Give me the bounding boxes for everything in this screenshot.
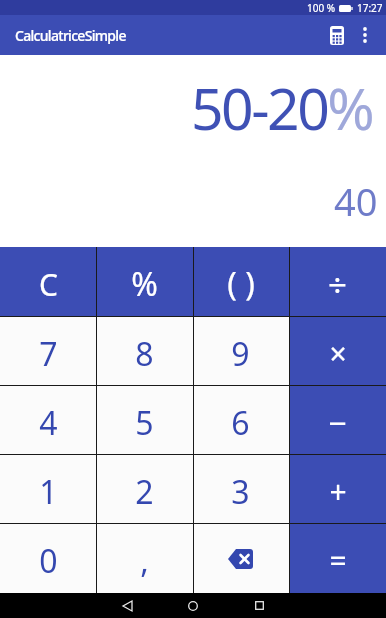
button[interactable]: , bbox=[96, 524, 192, 593]
button[interactable]: 4 bbox=[0, 386, 96, 455]
button[interactable]: 0 bbox=[0, 524, 96, 593]
button[interactable]: 1 bbox=[0, 455, 96, 524]
button[interactable]: 8 bbox=[96, 317, 192, 386]
button[interactable]: ( ) bbox=[192, 247, 289, 317]
button[interactable]: 3 bbox=[192, 455, 289, 524]
staticText: 17:27 bbox=[357, 1, 383, 15]
staticText: 40 bbox=[334, 175, 378, 227]
staticText: 3 bbox=[231, 470, 250, 514]
button[interactable]: % bbox=[96, 247, 192, 317]
staticText: C bbox=[39, 264, 58, 305]
staticText: 6 bbox=[231, 401, 250, 445]
button[interactable]: 5 bbox=[96, 386, 192, 455]
button[interactable] bbox=[231, 593, 287, 618]
button[interactable]: − bbox=[289, 386, 386, 455]
button[interactable]: × bbox=[289, 317, 386, 386]
staticText: 4 bbox=[39, 401, 58, 445]
button[interactable]: + bbox=[289, 455, 386, 524]
staticText: = bbox=[329, 540, 347, 581]
button[interactable]: = bbox=[289, 524, 386, 593]
button[interactable]: 9 bbox=[192, 317, 289, 386]
staticText: 7 bbox=[39, 332, 58, 376]
staticText: 100 % bbox=[307, 1, 336, 15]
staticText: 8 bbox=[135, 332, 154, 376]
button[interactable]: 6 bbox=[192, 386, 289, 455]
staticText: 5 bbox=[135, 401, 154, 445]
staticText: CalculatriceSimple bbox=[15, 26, 126, 45]
staticText: × bbox=[329, 333, 347, 374]
staticText: , bbox=[140, 539, 149, 583]
button[interactable] bbox=[350, 15, 380, 55]
staticText: ÷ bbox=[328, 262, 347, 307]
staticText: % bbox=[131, 262, 158, 306]
button[interactable] bbox=[99, 593, 155, 618]
button[interactable] bbox=[192, 524, 289, 593]
staticText: 50-20% bbox=[191, 69, 373, 147]
staticText: + bbox=[329, 471, 347, 512]
button[interactable]: ÷ bbox=[289, 247, 386, 317]
button[interactable]: C bbox=[0, 247, 96, 317]
button[interactable] bbox=[165, 593, 221, 618]
button[interactable]: 2 bbox=[96, 455, 192, 524]
staticText: 1 bbox=[39, 470, 58, 514]
staticText: − bbox=[328, 401, 347, 445]
button[interactable] bbox=[324, 15, 350, 55]
staticText: 0 bbox=[39, 539, 58, 583]
button[interactable]: 7 bbox=[0, 317, 96, 386]
staticText: 2 bbox=[135, 470, 154, 514]
staticText: 9 bbox=[231, 332, 250, 376]
staticText: ( ) bbox=[227, 262, 255, 306]
